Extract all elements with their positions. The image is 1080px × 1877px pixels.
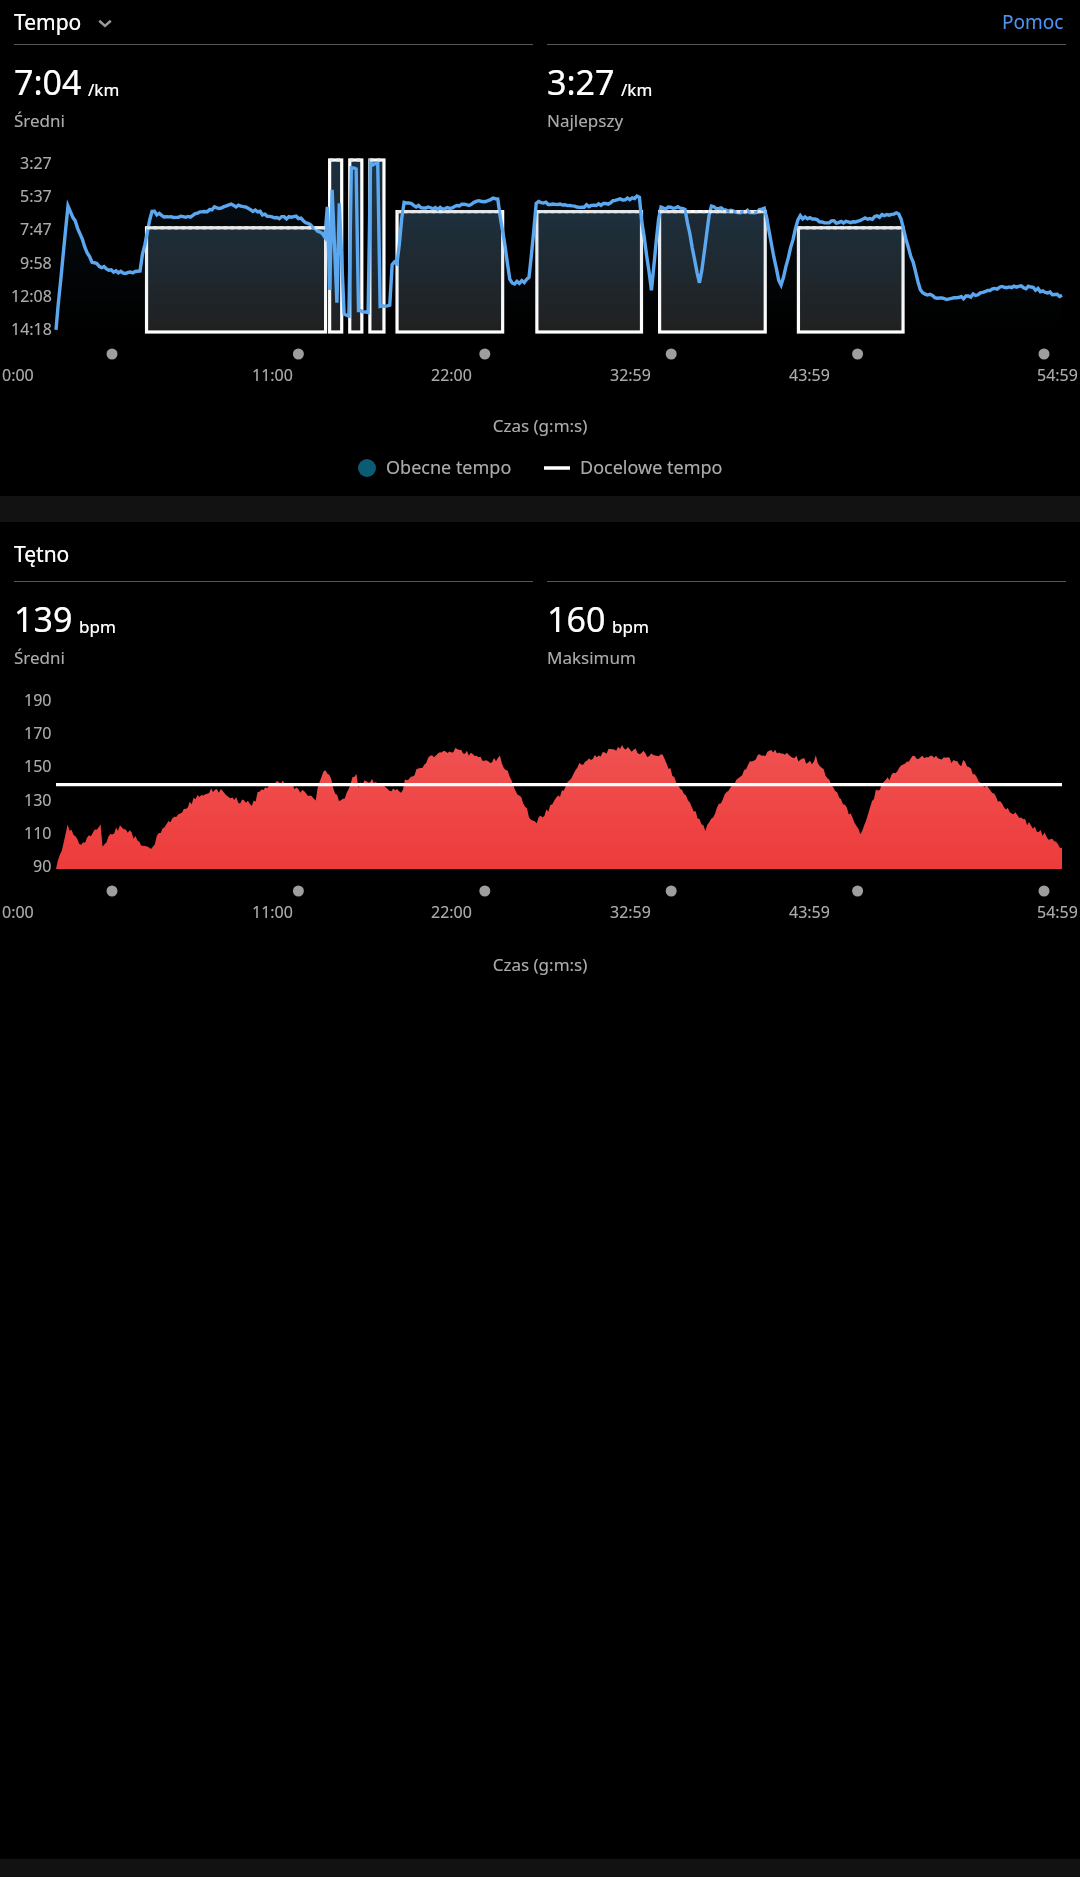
staticText: Tempo (14, 8, 82, 37)
staticText: 22:00 (431, 901, 472, 923)
staticText: 170 (24, 722, 52, 744)
staticText: Średni (14, 109, 65, 132)
staticText: 11:00 (252, 901, 293, 923)
staticText: Czas (g:m:s) (0, 953, 1080, 976)
staticText: Czas (g:m:s) (0, 414, 1080, 437)
staticText: /km (88, 78, 120, 101)
staticText: 3:27 (20, 152, 52, 174)
staticText: 139 (14, 596, 73, 642)
staticText: 32:59 (610, 901, 651, 923)
staticText: Maksimum (547, 646, 636, 669)
staticText: Najlepszy (547, 109, 624, 132)
staticText: 90 (33, 855, 52, 877)
staticText: 9:58 (20, 252, 52, 274)
staticText: 0:00 (2, 364, 34, 386)
staticText: Docelowe tempo (580, 455, 723, 480)
staticText: 11:00 (252, 364, 293, 386)
staticText: bpm (612, 615, 649, 638)
button[interactable]: Tempo (12, 8, 116, 37)
staticText: 130 (24, 789, 52, 811)
staticText: 43:59 (789, 364, 830, 386)
staticText: 12:08 (11, 285, 52, 307)
staticText: 14:18 (11, 318, 52, 340)
staticText: /km (621, 78, 653, 101)
staticText: Pomoc (1002, 9, 1064, 35)
staticText: Tętno (14, 540, 70, 569)
staticText: 5:37 (20, 185, 52, 207)
staticText: 7:47 (20, 218, 52, 240)
staticText: 22:00 (431, 364, 472, 386)
staticText: 0:00 (2, 901, 34, 923)
staticText: bpm (79, 615, 116, 638)
staticText: 110 (24, 822, 52, 844)
staticText: 160 (547, 596, 606, 642)
staticText: 7:04 (14, 59, 82, 105)
staticText: 190 (24, 689, 52, 711)
button[interactable]: Pomoc (998, 5, 1068, 39)
staticText: 150 (24, 755, 52, 777)
staticText: 32:59 (610, 364, 651, 386)
staticText: Średni (14, 646, 65, 669)
staticText: 3:27 (547, 59, 615, 105)
staticText: 43:59 (789, 901, 830, 923)
staticText: 54:59 (1037, 364, 1078, 386)
staticText: 54:59 (1037, 901, 1078, 923)
staticText: Obecne tempo (386, 455, 512, 480)
